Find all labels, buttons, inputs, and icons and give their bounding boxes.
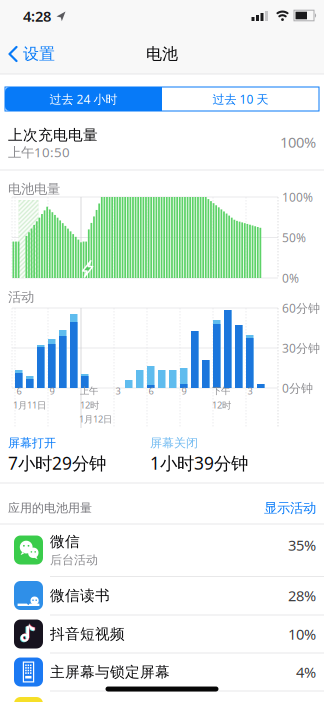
button[interactable]: 设置 [8, 39, 74, 69]
staticText: 30分钟 [282, 340, 320, 356]
staticText: 过去 10 天 [212, 91, 268, 107]
button[interactable]: 主屏幕与锁定屏幕 [0, 653, 324, 691]
staticText: 抖音短视频 [50, 625, 125, 643]
staticText: 活动 [8, 289, 34, 305]
staticText: 主屏幕与锁定屏幕 [50, 663, 170, 681]
staticText: 电池电量 [8, 181, 60, 197]
button[interactable]: 显示活动 [236, 496, 316, 520]
staticText: 上次充电电量 [8, 126, 98, 144]
staticText: 6 [16, 385, 21, 397]
button[interactable]: 抖音短视频 [0, 615, 324, 653]
staticText: 3 [115, 385, 120, 397]
staticText: 4% [296, 662, 316, 682]
staticText: 0% [282, 270, 299, 286]
staticText: 7小时29分钟 [8, 451, 106, 474]
staticText: 1月11日 [13, 399, 46, 411]
staticText: 10% [288, 624, 316, 644]
staticText: 35% [288, 535, 316, 555]
staticText: 微信 [50, 533, 80, 551]
staticText: 6 [148, 385, 153, 397]
button[interactable]: 过去 24 小时 [5, 87, 162, 111]
staticText: 上午 [80, 385, 98, 397]
staticText: 后台活动 [50, 553, 98, 567]
button[interactable]: 微信读书 [0, 576, 324, 614]
staticText: 50% [282, 229, 306, 245]
button[interactable]: 微信 [0, 524, 324, 576]
staticText: 3 [247, 385, 252, 397]
staticText: 过去 24 小时 [49, 91, 117, 107]
staticText: 9 [181, 385, 186, 397]
button[interactable]: 过去 10 天 [162, 87, 319, 111]
staticText: 1月12日 [79, 413, 112, 425]
staticText: 上午10:50 [8, 143, 70, 161]
staticText: 微信读书 [50, 586, 110, 604]
staticText: 设置 [23, 44, 55, 64]
staticText: 显示活动 [264, 500, 316, 516]
staticText: 4:28 [23, 6, 51, 26]
staticText: 0分钟 [282, 380, 313, 396]
staticText: 应用的电池用量 [8, 501, 92, 515]
staticText: 28% [288, 586, 316, 605]
staticText: 电池 [146, 44, 178, 64]
staticText: 屏幕关闭 [150, 436, 198, 450]
staticText: 屏幕打开 [8, 436, 56, 450]
staticText: 9 [49, 385, 54, 397]
staticText: 100% [280, 132, 316, 152]
staticText: 12时 [80, 399, 99, 411]
staticText: 1小时39分钟 [150, 451, 248, 474]
staticText: 100% [282, 189, 313, 205]
staticText: 12时 [212, 399, 231, 411]
staticText: 60分钟 [282, 300, 320, 316]
staticText: 下午 [212, 385, 230, 397]
